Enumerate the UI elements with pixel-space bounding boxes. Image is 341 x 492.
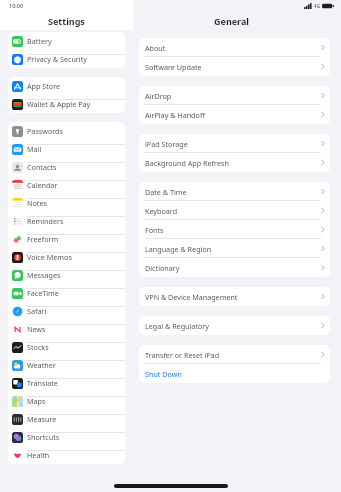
button[interactable]: Legal & Regulatory: [139, 316, 330, 335]
button[interactable]: Background App Refresh: [139, 153, 330, 172]
button[interactable]: Messages: [8, 266, 125, 284]
button[interactable]: Stocks: [8, 338, 125, 356]
staticText: Reminders: [27, 216, 64, 226]
staticText: AirDrop: [145, 91, 172, 101]
staticText: Mail: [27, 144, 42, 154]
staticText: Battery: [27, 36, 52, 46]
staticText: Messages: [27, 270, 61, 280]
staticText: Notes: [27, 198, 47, 208]
staticText: Freeform: [27, 234, 59, 244]
staticText: Date & Time: [145, 187, 187, 197]
button[interactable]: Battery: [8, 32, 125, 50]
staticText: Fonts: [145, 225, 164, 235]
button[interactable]: FaceTime: [8, 284, 125, 302]
button[interactable]: Calendar: [8, 176, 125, 194]
button[interactable]: Software Update: [139, 57, 330, 76]
staticText: Dictionary: [145, 263, 180, 273]
staticText: Voice Memos: [27, 252, 72, 262]
button[interactable]: VPN & Device Management: [139, 287, 330, 306]
staticText: Settings: [48, 15, 85, 27]
button[interactable]: Safari: [8, 302, 125, 320]
button[interactable]: iPad Storage: [139, 134, 330, 153]
staticText: 10:00: [9, 2, 24, 9]
staticText: Keyboard: [145, 206, 178, 216]
button[interactable]: Health: [8, 446, 125, 464]
button[interactable]: Translate: [8, 374, 125, 392]
button[interactable]: Keyboard: [139, 201, 330, 220]
button[interactable]: AirPlay & Handoff: [139, 105, 330, 124]
button[interactable]: News: [8, 320, 125, 338]
staticText: Wallet & Apple Pay: [27, 99, 91, 109]
staticText: Background App Refresh: [145, 158, 229, 168]
button[interactable]: About: [139, 38, 330, 57]
staticText: Shortcuts: [27, 432, 60, 442]
button[interactable]: Date & Time: [139, 182, 330, 201]
staticText: 4G: [314, 3, 320, 9]
button[interactable]: Wallet & Apple Pay: [8, 95, 125, 113]
button[interactable]: Language & Region: [139, 239, 330, 258]
staticText: Safari: [27, 306, 47, 316]
staticText: FaceTime: [27, 288, 59, 298]
button[interactable]: Transfer or Reset iPad: [139, 345, 330, 364]
button[interactable]: Contacts: [8, 158, 125, 176]
staticText: VPN & Device Management: [145, 292, 238, 302]
button[interactable]: Measure: [8, 410, 125, 428]
staticText: Maps: [27, 396, 46, 406]
staticText: Legal & Regulatory: [145, 321, 209, 331]
button[interactable]: Freeform: [8, 230, 125, 248]
staticText: Calendar: [27, 180, 58, 190]
staticText: Weather: [27, 360, 56, 370]
staticText: Passwords: [27, 126, 63, 136]
button[interactable]: Fonts: [139, 220, 330, 239]
staticText: Stocks: [27, 342, 49, 352]
button[interactable]: Passwords: [8, 122, 125, 140]
staticText: News: [27, 324, 46, 334]
staticText: App Store: [27, 81, 61, 91]
staticText: AirPlay & Handoff: [145, 110, 205, 120]
button[interactable]: Voice Memos: [8, 248, 125, 266]
staticText: Measure: [27, 414, 57, 424]
button[interactable]: Reminders: [8, 212, 125, 230]
button[interactable]: Shortcuts: [8, 428, 125, 446]
staticText: Privacy & Security: [27, 54, 87, 64]
staticText: Software Update: [145, 62, 202, 72]
button[interactable]: Privacy & Security: [8, 50, 125, 68]
staticText: Translate: [27, 378, 58, 388]
staticText: Health: [27, 450, 50, 460]
staticText: iPad Storage: [145, 139, 188, 149]
staticText: Shut Down: [145, 369, 182, 379]
button[interactable]: Dictionary: [139, 258, 330, 277]
staticText: Transfer or Reset iPad: [145, 350, 220, 360]
button[interactable]: Mail: [8, 140, 125, 158]
button[interactable]: Weather: [8, 356, 125, 374]
staticText: Language & Region: [145, 244, 212, 254]
button[interactable]: Notes: [8, 194, 125, 212]
staticText: General: [214, 15, 250, 27]
staticText: About: [145, 43, 166, 53]
button[interactable]: AirDrop: [139, 86, 330, 105]
button[interactable]: Shut Down: [139, 364, 330, 383]
staticText: Contacts: [27, 162, 57, 172]
button[interactable]: Maps: [8, 392, 125, 410]
button[interactable]: App Store: [8, 77, 125, 95]
